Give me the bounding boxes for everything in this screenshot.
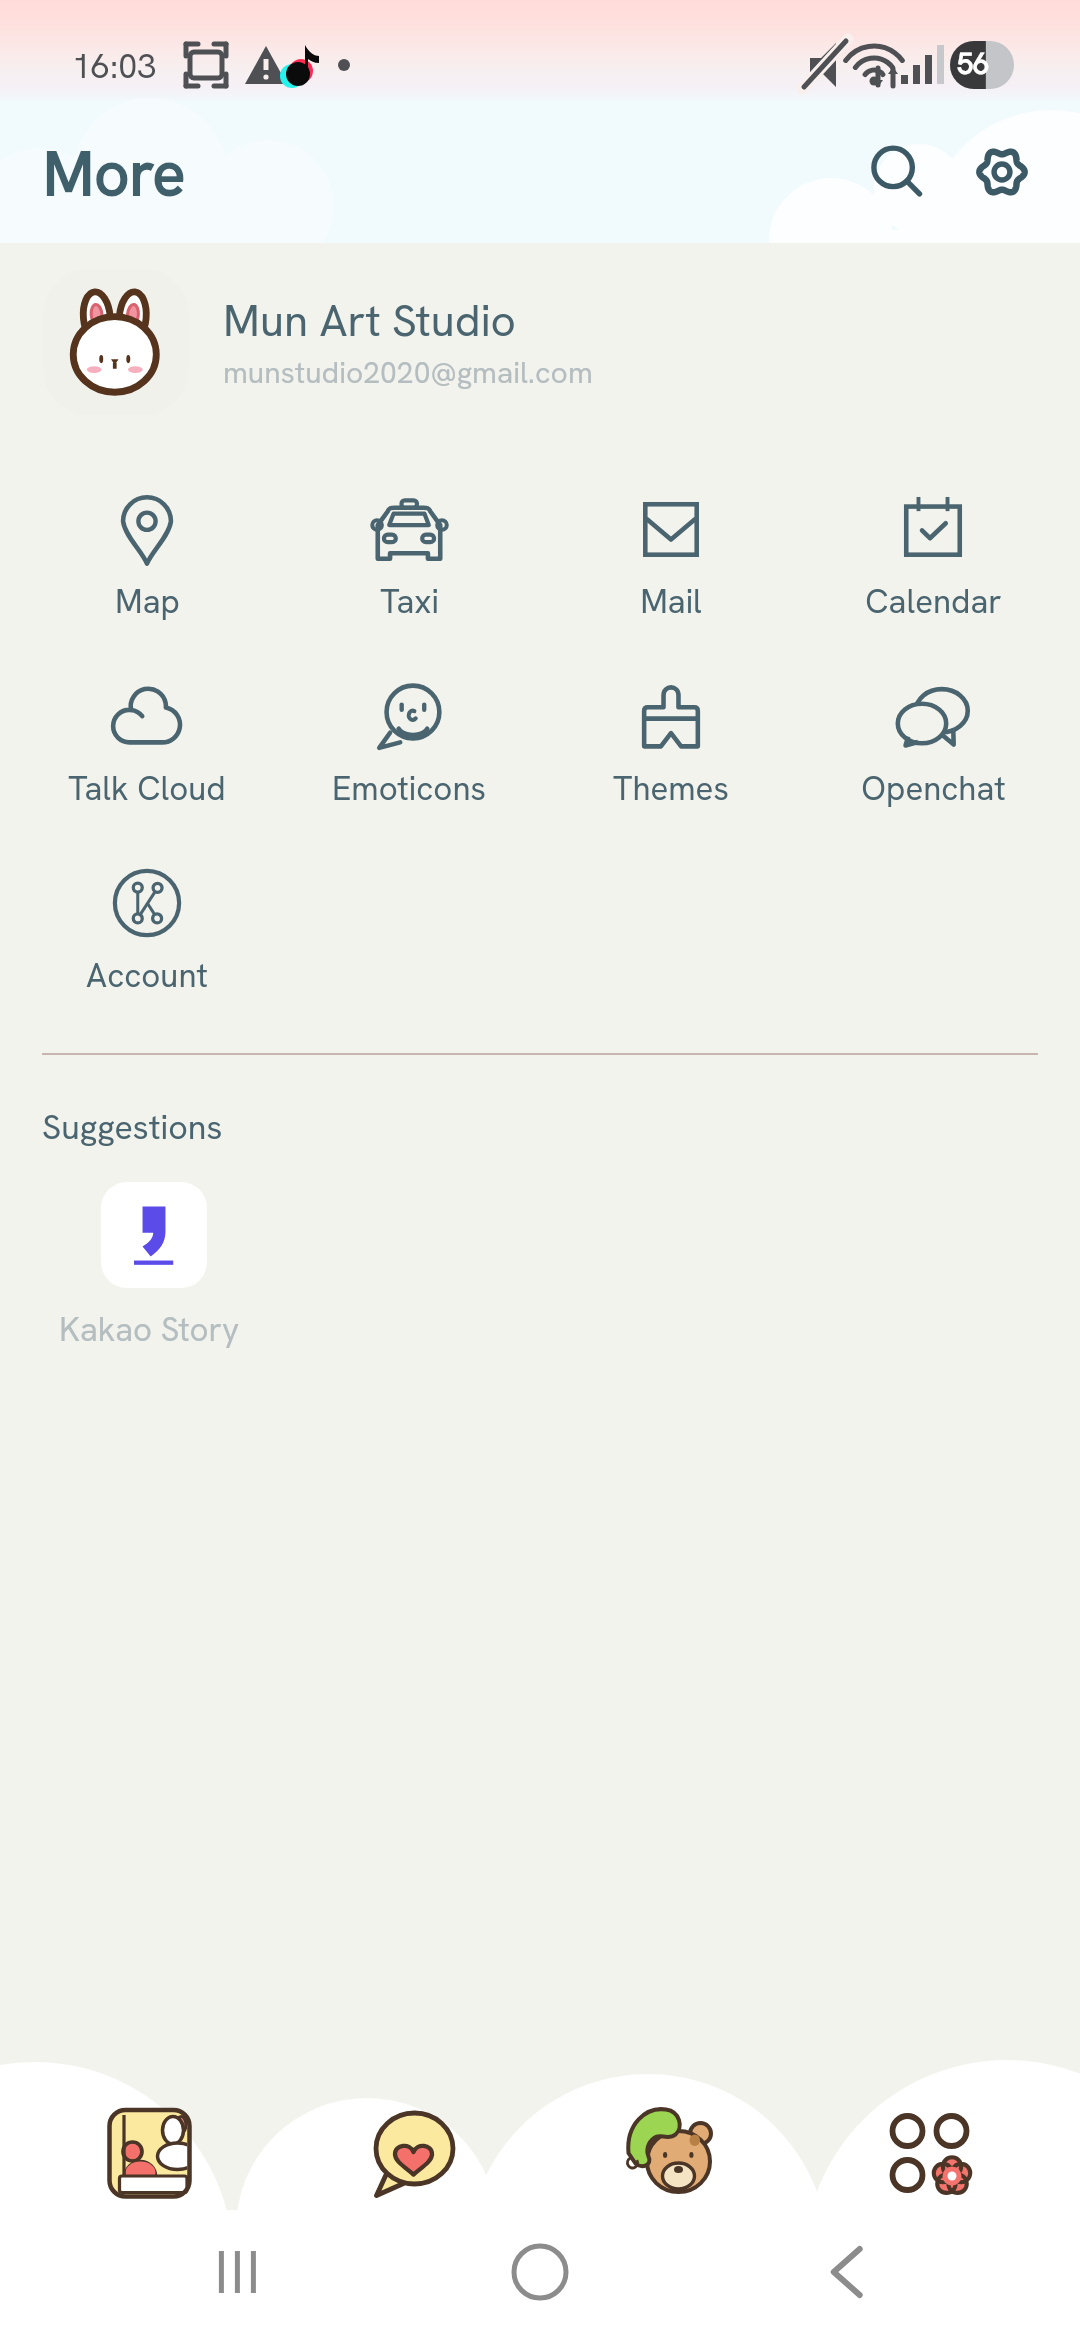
staticText: Emoticons [332,767,486,810]
button[interactable]: Friends [20,2083,280,2223]
staticText: Mun Art Studio [223,292,516,349]
staticText: munstudio2020@gmail.com [223,353,593,392]
button[interactable]: Themes [540,640,802,816]
button[interactable]: Search [849,127,949,227]
button[interactable]: Calls [540,2083,800,2223]
staticText: Suggestions [42,1105,223,1149]
staticText: Themes [613,767,729,810]
button[interactable]: Openchat [802,640,1064,816]
button[interactable]: Mail [540,453,802,629]
staticText: Account [86,954,208,997]
staticText: 16:03 [72,44,157,88]
staticText: Openchat [861,767,1006,810]
staticText: Calendar [865,580,1002,623]
staticText: More [43,134,186,213]
button[interactable]: Account [16,827,278,1003]
button[interactable]: More [800,2083,1060,2223]
button[interactable]: Taxi [278,453,540,629]
button[interactable]: Mun Art Studio [0,243,1080,441]
staticText: Taxi [380,580,439,623]
staticText: Map [115,580,180,623]
button[interactable]: Calendar [802,453,1064,629]
button[interactable]: Emoticons [278,640,540,816]
button[interactable]: Settings [952,122,1052,222]
staticText: Talk Cloud [68,767,226,810]
staticText: Mail [640,580,702,623]
button[interactable]: Chats [280,2083,540,2223]
staticText: 56 [957,45,990,83]
button[interactable]: Map [16,453,278,629]
button[interactable]: Talk Cloud [16,640,278,816]
button[interactable]: Kakao Story [59,1182,240,1351]
staticText: Kakao Story [59,1308,240,1351]
